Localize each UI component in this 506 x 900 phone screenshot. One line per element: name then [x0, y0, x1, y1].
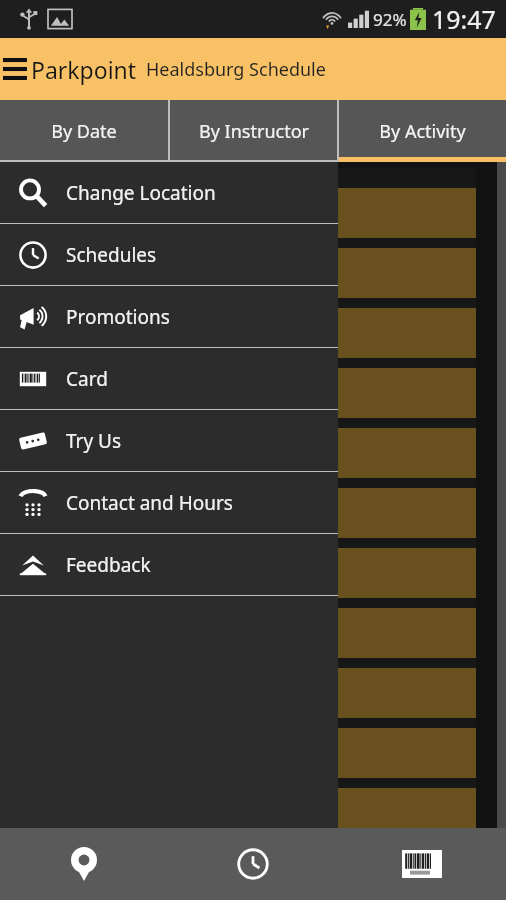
button[interactable]: Change Location — [0, 162, 338, 223]
button[interactable] — [8, 308, 476, 358]
staticText: By Activity — [379, 119, 466, 144]
staticText: 19:47 — [432, 2, 496, 36]
button[interactable]: By Date — [0, 100, 168, 162]
button[interactable]: By Instructor — [170, 100, 337, 162]
button[interactable]: Schedules — [168, 828, 337, 900]
button[interactable]: Card — [337, 828, 506, 900]
button[interactable] — [8, 728, 476, 778]
staticText: Healdsburg Schedule — [146, 57, 326, 82]
staticText: Parkpoint — [31, 54, 137, 85]
button[interactable] — [8, 428, 476, 478]
button[interactable]: Contact and Hours — [0, 472, 338, 533]
button[interactable] — [8, 188, 476, 238]
button[interactable]: Open navigation drawer — [0, 49, 30, 89]
button[interactable]: Promotions — [0, 286, 338, 347]
button[interactable] — [8, 548, 476, 598]
staticText: Contact and Hours — [66, 490, 233, 516]
button[interactable]: Card — [0, 348, 338, 409]
staticText: Card — [66, 366, 108, 392]
button[interactable] — [8, 608, 476, 658]
staticText: By Instructor — [199, 119, 309, 144]
staticText: 92% — [373, 8, 407, 31]
button[interactable]: Schedules — [0, 224, 338, 285]
button[interactable] — [8, 788, 476, 828]
staticText: Try Us — [66, 428, 122, 454]
staticText: Schedules — [66, 242, 157, 268]
staticText: By Date — [51, 119, 117, 144]
button[interactable]: Locations — [0, 828, 168, 900]
button[interactable]: By Activity — [339, 100, 506, 162]
button[interactable] — [8, 248, 476, 298]
button[interactable] — [8, 668, 476, 718]
staticText: Feedback — [66, 552, 151, 578]
button[interactable]: Feedback — [0, 534, 338, 595]
staticText: Change Location — [66, 180, 216, 206]
button[interactable] — [8, 488, 476, 538]
staticText: Promotions — [66, 304, 170, 330]
button[interactable]: Try Us — [0, 410, 338, 471]
button[interactable] — [8, 368, 476, 418]
